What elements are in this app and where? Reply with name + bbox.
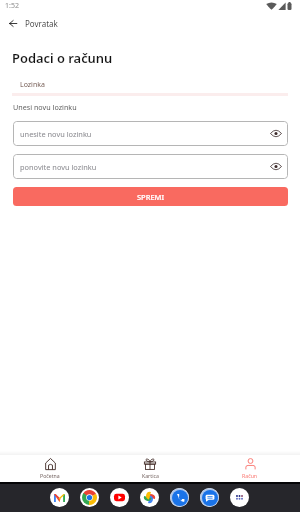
- button[interactable]: Apps: [230, 488, 249, 507]
- button[interactable]: Chrome: [80, 488, 99, 507]
- button[interactable]: unesite novu lozinku: [13, 121, 288, 146]
- button[interactable]: Početna: [0, 455, 100, 482]
- button[interactable]: Toggle password visibility: [268, 159, 283, 174]
- button[interactable]: Toggle password visibility: [268, 126, 283, 141]
- staticText: Lozinka: [20, 80, 45, 90]
- button[interactable]: Back: [0, 11, 25, 35]
- staticText: Kartica: [142, 472, 159, 479]
- staticText: Podaci o računu: [12, 49, 113, 67]
- staticText: Račun: [242, 472, 258, 479]
- staticText: Unesi novu lozinku: [13, 102, 77, 112]
- staticText: Povratak: [25, 18, 58, 29]
- button[interactable]: Messages: [200, 488, 219, 507]
- staticText: unesite novu lozinku: [20, 129, 92, 139]
- staticText: SPREMI: [137, 192, 165, 202]
- button[interactable]: ponovite novu lozinku: [13, 154, 288, 179]
- button[interactable]: Kartica: [100, 455, 200, 482]
- button[interactable]: Phone: [170, 488, 189, 507]
- button[interactable]: Račun: [200, 455, 300, 482]
- staticText: ponovite novu lozinku: [20, 162, 97, 172]
- button[interactable]: SPREMI: [13, 187, 288, 206]
- staticText: Početna: [40, 472, 60, 479]
- button[interactable]: Gmail: [50, 488, 69, 507]
- staticText: 1:52: [5, 1, 19, 11]
- button[interactable]: Photos: [140, 488, 159, 507]
- button[interactable]: YouTube: [110, 488, 129, 507]
